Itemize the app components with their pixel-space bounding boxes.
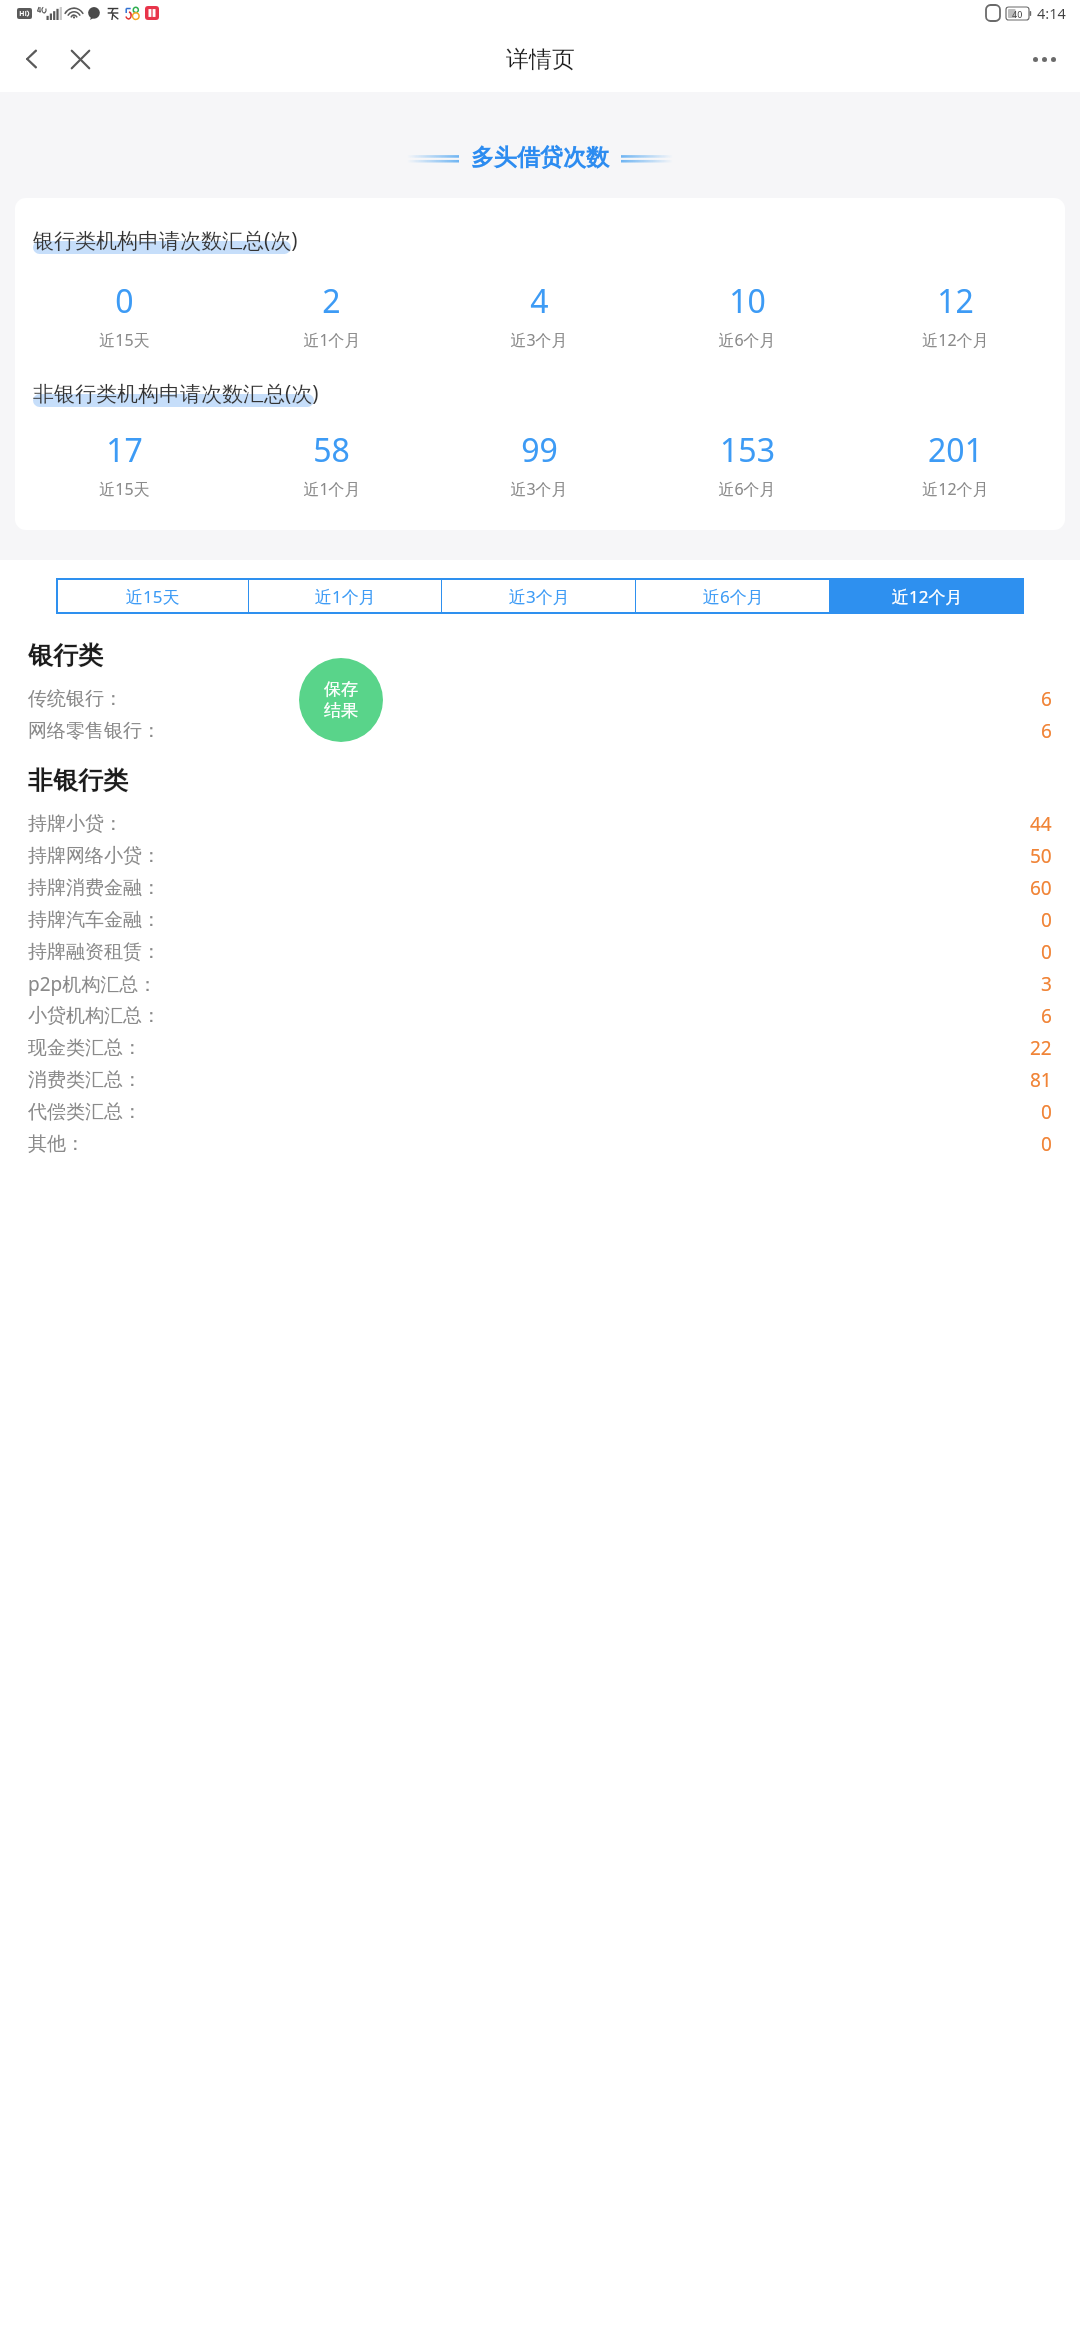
button[interactable]: Close bbox=[56, 35, 104, 83]
staticText: 持牌消费金融： bbox=[28, 876, 161, 900]
staticText: 近6个月 bbox=[718, 329, 776, 351]
staticText: 10 bbox=[729, 279, 766, 323]
staticText: 银行类 bbox=[28, 640, 103, 671]
staticText: 12 bbox=[937, 279, 974, 323]
staticText: 3 bbox=[1041, 971, 1052, 997]
staticText: 持牌汽车金融： bbox=[28, 908, 161, 932]
button[interactable]: 近6个月 bbox=[636, 578, 830, 614]
staticText: 近6个月 bbox=[718, 478, 776, 500]
staticText: p2p机构汇总： bbox=[28, 971, 158, 997]
staticText: 4:14 bbox=[1037, 3, 1066, 23]
staticText: 现金类汇总： bbox=[28, 1036, 142, 1060]
staticText: 非银行类 bbox=[28, 765, 128, 796]
staticText: 近1个月 bbox=[315, 585, 376, 608]
staticText: 81 bbox=[1030, 1067, 1052, 1093]
staticText: 持牌小贷： bbox=[28, 812, 123, 836]
staticText: 17 bbox=[106, 428, 143, 472]
staticText: 4 bbox=[530, 279, 549, 323]
staticText: 消费类汇总： bbox=[28, 1068, 142, 1092]
staticText: 近12个月 bbox=[922, 478, 989, 500]
staticText: 40 bbox=[1012, 8, 1023, 20]
staticText: 0 bbox=[1041, 1131, 1052, 1157]
button[interactable]: More options bbox=[1018, 33, 1070, 85]
button[interactable]: 持牌消费金融： bbox=[28, 872, 1052, 904]
button[interactable]: 持牌汽车金融： bbox=[28, 904, 1052, 936]
button[interactable]: 代偿类汇总： bbox=[28, 1096, 1052, 1128]
staticText: 银行类机构申请次数汇总(次) bbox=[33, 226, 298, 255]
button[interactable]: Back bbox=[8, 35, 56, 83]
staticText: 代偿类汇总： bbox=[28, 1100, 142, 1124]
button[interactable]: p2p机构汇总： bbox=[28, 968, 1052, 1000]
button[interactable]: 持牌网络小贷： bbox=[28, 840, 1052, 872]
staticText: 持牌融资租赁： bbox=[28, 940, 161, 964]
staticText: 60 bbox=[1030, 875, 1052, 901]
button[interactable]: 持牌融资租赁： bbox=[28, 936, 1052, 968]
button[interactable]: 其他： bbox=[28, 1128, 1052, 1160]
button[interactable]: 近1个月 bbox=[249, 578, 442, 614]
staticText: 小贷机构汇总： bbox=[28, 1004, 161, 1028]
staticText: 持牌网络小贷： bbox=[28, 844, 161, 868]
staticText: 58 bbox=[313, 428, 350, 472]
staticText: 0 bbox=[1041, 907, 1052, 933]
staticText: 近15天 bbox=[99, 329, 150, 351]
button[interactable]: 保存 bbox=[299, 658, 383, 742]
button[interactable]: 现金类汇总： bbox=[28, 1032, 1052, 1064]
staticText: 近3个月 bbox=[510, 329, 568, 351]
staticText: 近3个月 bbox=[510, 478, 568, 500]
button[interactable]: 消费类汇总： bbox=[28, 1064, 1052, 1096]
staticText: 非银行类机构申请次数汇总(次) bbox=[33, 379, 319, 408]
button[interactable]: 持牌小贷： bbox=[28, 808, 1052, 840]
staticText: 多头借贷次数 bbox=[471, 143, 609, 172]
staticText: 2 bbox=[322, 279, 341, 323]
staticText: 201 bbox=[928, 428, 983, 472]
staticText: 结果 bbox=[324, 700, 358, 721]
staticText: 网络零售银行： bbox=[28, 719, 161, 743]
button[interactable]: 近15天 bbox=[56, 578, 249, 614]
staticText: 153 bbox=[720, 428, 775, 472]
staticText: 近12个月 bbox=[892, 585, 963, 608]
staticText: 近1个月 bbox=[303, 329, 361, 351]
button[interactable]: 传统银行： bbox=[28, 683, 1052, 715]
staticText: 50 bbox=[1030, 843, 1052, 869]
button[interactable]: 小贷机构汇总： bbox=[28, 1000, 1052, 1032]
staticText: 0 bbox=[115, 279, 134, 323]
staticText: 近15天 bbox=[126, 585, 180, 608]
staticText: 详情页 bbox=[506, 45, 575, 74]
button[interactable]: 近3个月 bbox=[442, 578, 636, 614]
staticText: 22 bbox=[1030, 1035, 1052, 1061]
staticText: 保存 bbox=[324, 679, 358, 700]
button[interactable]: 网络零售银行： bbox=[28, 715, 1052, 747]
staticText: 6 bbox=[1041, 1003, 1052, 1029]
staticText: 其他： bbox=[28, 1132, 85, 1156]
button[interactable]: 近12个月 bbox=[830, 578, 1024, 614]
staticText: 0 bbox=[1041, 1099, 1052, 1125]
staticText: 近12个月 bbox=[922, 329, 989, 351]
staticText: 近1个月 bbox=[303, 478, 361, 500]
staticText: 0 bbox=[1041, 939, 1052, 965]
staticText: 近15天 bbox=[99, 478, 150, 500]
staticText: 传统银行： bbox=[28, 687, 123, 711]
staticText: 6 bbox=[1041, 718, 1052, 744]
staticText: 6 bbox=[1041, 686, 1052, 712]
staticText: 近6个月 bbox=[703, 585, 764, 608]
staticText: 99 bbox=[521, 428, 558, 472]
staticText: 近3个月 bbox=[509, 585, 570, 608]
staticText: 44 bbox=[1030, 811, 1052, 837]
